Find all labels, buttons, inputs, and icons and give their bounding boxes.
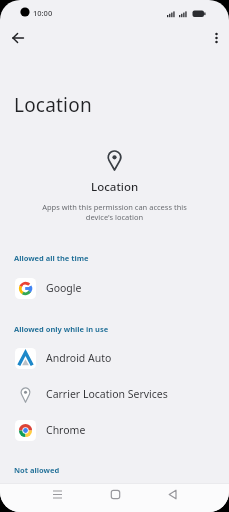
button[interactable]: Android Auto bbox=[0, 347, 229, 369]
staticText: Not allowed bbox=[14, 465, 60, 475]
staticText: Android Auto bbox=[46, 351, 112, 365]
button[interactable] bbox=[104, 483, 127, 506]
staticText: 10:00 bbox=[33, 8, 53, 18]
button[interactable]: Google bbox=[0, 277, 229, 299]
staticText: Location bbox=[14, 92, 92, 118]
button[interactable]: Carrier Location Services bbox=[0, 383, 229, 405]
button[interactable] bbox=[207, 27, 229, 49]
staticText: Chrome bbox=[46, 423, 86, 437]
staticText: Allowed all the time bbox=[14, 253, 89, 263]
button[interactable]: Chrome bbox=[0, 419, 229, 441]
staticText: Apps with this permission can access thi… bbox=[42, 202, 187, 222]
staticText: Google bbox=[46, 281, 82, 295]
button[interactable] bbox=[161, 483, 184, 506]
staticText: Allowed only while in use bbox=[14, 324, 109, 334]
button[interactable] bbox=[7, 27, 29, 49]
staticText: Location bbox=[91, 179, 139, 195]
staticText: Carrier Location Services bbox=[46, 387, 168, 401]
button[interactable] bbox=[46, 483, 69, 506]
